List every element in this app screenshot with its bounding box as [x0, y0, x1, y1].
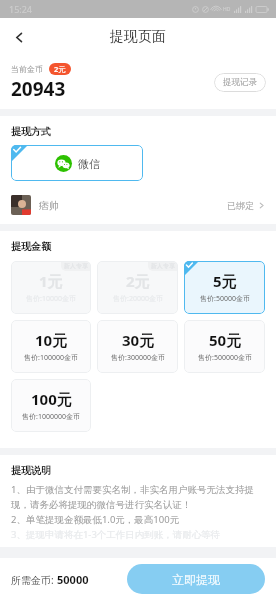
- button[interactable]: 提现记录: [214, 73, 266, 92]
- staticText: HD: [223, 6, 231, 13]
- staticText: 售价:50000金币: [200, 294, 250, 304]
- button[interactable]: 30元: [97, 320, 178, 373]
- staticText: 当前金币: [11, 64, 43, 74]
- staticText: 提现页面: [110, 28, 166, 46]
- staticText: 痞帅: [39, 199, 59, 212]
- staticText: 售价:100000金币: [24, 353, 78, 363]
- button[interactable]: 100元: [11, 379, 91, 432]
- staticText: 新人专享: [151, 262, 175, 270]
- staticText: 2元: [54, 64, 66, 74]
- staticText: 3、提现申请将在1-3个工作日内到账，请耐心等待: [11, 528, 221, 541]
- staticText: 30元: [122, 330, 155, 350]
- staticText: 新人专享: [64, 262, 88, 270]
- staticText: 提现记录: [223, 77, 257, 88]
- staticText: 15:24: [9, 3, 33, 15]
- staticText: 售价:20000金币: [113, 294, 163, 304]
- button[interactable]: 10元: [11, 320, 91, 373]
- button[interactable]: 立即提现: [127, 564, 265, 594]
- staticText: 1元: [39, 271, 63, 291]
- staticText: 提现说明: [11, 464, 51, 477]
- staticText: 售价:1000000金币: [22, 412, 80, 422]
- staticText: 立即提现: [172, 572, 220, 587]
- button[interactable]: 50元: [184, 320, 265, 373]
- staticText: 售价:10000金币: [26, 294, 76, 304]
- staticText: 所需金币:: [11, 573, 57, 587]
- button[interactable]: 微信: [11, 145, 143, 181]
- staticText: 微信: [78, 157, 100, 171]
- staticText: 50元: [209, 330, 242, 350]
- staticText: 10元: [35, 330, 68, 350]
- staticText: 已绑定: [227, 200, 254, 211]
- button[interactable]: 新人专享: [97, 261, 178, 314]
- button[interactable]: Back: [0, 18, 38, 56]
- button[interactable]: 新人专享: [11, 261, 91, 314]
- staticText: 售价:500000金币: [198, 353, 252, 363]
- button[interactable]: 5元: [184, 261, 265, 314]
- staticText: 售价:300000金币: [111, 353, 165, 363]
- staticText: 提现方式: [11, 125, 51, 138]
- staticText: 2、单笔提现金额最低1.0元，最高100元: [11, 513, 180, 526]
- button[interactable]: 痞帅: [0, 190, 276, 220]
- staticText: 提现金额: [11, 240, 51, 253]
- staticText: 50000: [57, 572, 89, 587]
- staticText: 2元: [126, 271, 150, 291]
- staticText: 100元: [31, 389, 72, 409]
- staticText: 1、由于微信支付需要实名制，非实名用户账号无法支持提现，请务必将提现的微信号进行…: [11, 483, 265, 511]
- staticText: 5元: [213, 271, 237, 291]
- staticText: 20943: [11, 76, 66, 102]
